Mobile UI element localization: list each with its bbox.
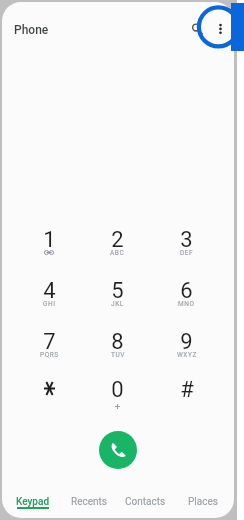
button[interactable]: Call	[99, 431, 137, 469]
button[interactable]: 3	[152, 222, 221, 273]
staticText: #	[180, 377, 194, 403]
button[interactable]: Keypad	[5, 496, 61, 518]
staticText: 4	[43, 278, 56, 304]
staticText: 8	[111, 329, 124, 355]
button[interactable]: 8	[83, 324, 152, 375]
staticText: 0	[111, 377, 124, 403]
button[interactable]: 9	[152, 324, 221, 375]
button[interactable]: 0	[83, 372, 152, 423]
staticText: 3	[180, 227, 193, 253]
button[interactable]: More options	[206, 14, 234, 44]
staticText: TUV	[111, 351, 125, 359]
staticText: 6	[180, 278, 193, 304]
staticText: Keypad	[16, 496, 50, 508]
staticText: ABC	[110, 249, 125, 257]
button[interactable]: 6	[152, 273, 221, 324]
staticText: 1	[43, 227, 56, 253]
staticText: 7	[43, 329, 56, 355]
button[interactable]: 4	[15, 273, 83, 324]
staticText: Phone	[14, 23, 49, 37]
button[interactable]: Search	[182, 13, 210, 41]
staticText: Recents	[71, 496, 107, 508]
staticText: JKL	[111, 300, 124, 308]
button[interactable]: 5	[83, 273, 152, 324]
button[interactable]: 7	[15, 324, 83, 375]
button[interactable]: 2	[83, 222, 152, 273]
staticText: MNO	[178, 300, 195, 308]
button[interactable]: 1	[15, 222, 83, 273]
button[interactable]: Recents	[61, 496, 117, 518]
button[interactable]: Contacts	[117, 496, 174, 518]
staticText: 9	[180, 329, 193, 355]
staticText: Places	[188, 496, 218, 508]
staticText: 5	[111, 278, 124, 304]
button[interactable]: Places	[174, 496, 231, 518]
staticText: Contacts	[125, 496, 166, 508]
button[interactable]	[15, 372, 83, 423]
staticText: 2	[111, 227, 124, 253]
staticText: PQRS	[40, 351, 59, 359]
staticText: GHI	[43, 300, 56, 308]
staticText: WXYZ	[177, 351, 197, 359]
button[interactable]: #	[152, 372, 221, 423]
staticText: DEF	[180, 249, 194, 257]
